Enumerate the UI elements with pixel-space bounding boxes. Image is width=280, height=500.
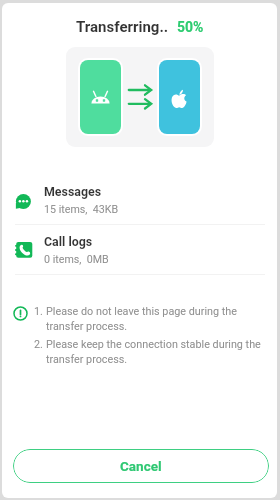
staticText: 0 items, 0MB [44,253,109,266]
button[interactable]: Messages [2,175,277,224]
button[interactable]: Call logs [2,225,277,274]
staticText: 15 items, 43KB [44,203,119,216]
staticText: Call logs [44,234,93,249]
staticText: 1. [34,305,43,318]
staticText: Transferring.. [76,18,169,36]
staticText: Please keep the connection stable during… [46,338,270,366]
staticText: Messages [44,184,102,199]
staticText: 2. [34,338,43,351]
button[interactable]: Cancel [13,449,269,483]
staticText: 50% [177,19,204,35]
staticText: Cancel [120,458,162,474]
staticText: Please do not leave this page during the… [46,305,270,333]
